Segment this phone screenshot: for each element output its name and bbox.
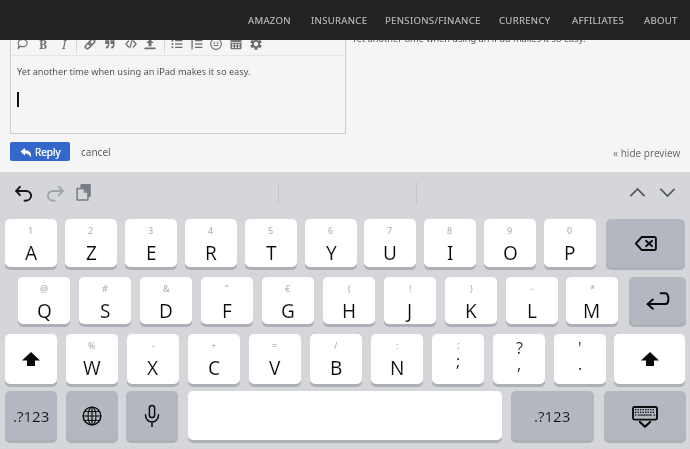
button[interactable]: Editor tool xyxy=(122,35,140,53)
button[interactable]: PENSIONS/FINANCE xyxy=(373,8,493,32)
button[interactable]: 5 xyxy=(245,219,297,267)
button[interactable]: Previous field xyxy=(624,179,650,205)
button[interactable]: 9 xyxy=(484,219,536,267)
staticText: ) xyxy=(470,282,473,294)
button[interactable]: 3 xyxy=(125,219,177,267)
button[interactable]: 8 xyxy=(424,219,476,267)
button[interactable]: : xyxy=(432,334,484,384)
button[interactable]: + xyxy=(188,334,240,384)
button[interactable]: Editor tool xyxy=(141,35,159,53)
staticText: , xyxy=(517,353,522,375)
button[interactable]: ABOUT xyxy=(601,8,690,32)
button[interactable]: Return xyxy=(629,277,686,324)
button[interactable]: @ xyxy=(18,277,70,324)
button[interactable]: Paste xyxy=(71,179,97,205)
staticText: cancel xyxy=(81,145,111,159)
staticText: S xyxy=(100,298,111,324)
button[interactable]: AMAZON xyxy=(209,8,329,32)
button[interactable]: = xyxy=(249,334,301,384)
button[interactable]: « hide preview xyxy=(609,143,685,162)
staticText: .?123 xyxy=(534,406,571,426)
staticText: V xyxy=(269,355,281,381)
button[interactable]: Undo xyxy=(11,179,37,205)
staticText: L xyxy=(527,298,537,324)
button[interactable]: # xyxy=(79,277,131,324)
staticText: A xyxy=(25,240,38,266)
button[interactable]: Shift xyxy=(614,334,685,384)
button[interactable]: ' xyxy=(554,334,606,384)
staticText: H xyxy=(342,298,357,324)
staticText: Yet another time when using an iPad make… xyxy=(17,65,251,78)
button[interactable]: Shift xyxy=(5,334,57,384)
staticText: ABOUT xyxy=(644,14,678,27)
staticText: J xyxy=(407,298,413,324)
staticText: + xyxy=(211,339,217,351)
button[interactable]: Editor tool xyxy=(168,35,186,53)
staticText: Y xyxy=(326,240,337,266)
staticText: / xyxy=(334,339,338,351)
button[interactable]: Next field xyxy=(654,179,680,205)
button[interactable]: Reply xyxy=(10,142,70,161)
staticText: B xyxy=(330,355,343,381)
button[interactable]: Editor tool xyxy=(227,35,245,53)
staticText: INSURANCE xyxy=(311,14,368,27)
button[interactable]: & xyxy=(140,277,192,324)
staticText: I xyxy=(447,240,454,266)
button[interactable]: ! xyxy=(384,277,436,324)
staticText: U xyxy=(383,240,397,266)
button[interactable]: Editor tool xyxy=(247,35,265,53)
staticText: P xyxy=(564,240,576,266)
staticText: ' xyxy=(578,337,582,359)
button[interactable]: CURRENCY xyxy=(465,8,585,32)
button[interactable]: .?123 xyxy=(511,391,594,440)
staticText: @ xyxy=(40,282,49,294)
button[interactable]: € xyxy=(262,277,314,324)
staticText: 3 xyxy=(148,224,154,236)
button[interactable]: Redo xyxy=(41,179,67,205)
button[interactable]: 2 xyxy=(65,219,117,267)
button[interactable]: Change language xyxy=(66,391,118,440)
button[interactable]: - xyxy=(506,277,558,324)
button[interactable]: Dictate xyxy=(126,391,178,440)
staticText: * xyxy=(590,282,595,294)
button[interactable]: ) xyxy=(445,277,497,324)
button[interactable]: 0 xyxy=(544,219,596,267)
button[interactable]: AFFILIATES xyxy=(538,8,658,32)
staticText: ( xyxy=(348,282,351,294)
button[interactable]: : xyxy=(371,334,423,384)
button[interactable]: ( xyxy=(323,277,375,324)
button[interactable]: / xyxy=(310,334,362,384)
staticText: G xyxy=(281,298,295,324)
staticText: ” xyxy=(225,282,229,294)
staticText: % xyxy=(88,339,96,351)
button[interactable]: % xyxy=(66,334,118,384)
staticText: 2 xyxy=(88,224,94,236)
staticText: 5 xyxy=(268,224,274,236)
staticText: W xyxy=(83,355,101,381)
button[interactable]: .?123 xyxy=(5,391,57,440)
staticText: R xyxy=(205,240,217,266)
button[interactable]: Editor tool xyxy=(188,35,206,53)
button[interactable]: 1 xyxy=(5,219,57,267)
button[interactable]: INSURANCE xyxy=(279,8,399,32)
button[interactable]: Editor tool xyxy=(81,35,99,53)
button[interactable]: ? xyxy=(493,334,545,384)
button[interactable]: Editor tool xyxy=(14,35,32,53)
button[interactable]: cancel xyxy=(78,142,114,161)
button[interactable]: Hide keyboard xyxy=(604,391,686,440)
button[interactable]: Backspace xyxy=(606,219,685,267)
button[interactable]: Editor tool xyxy=(207,35,225,53)
button[interactable]: ” xyxy=(201,277,253,324)
button[interactable]: I xyxy=(55,35,73,53)
button[interactable]: B xyxy=(34,35,52,53)
button[interactable]: Editor tool xyxy=(101,35,119,53)
button[interactable]: 6 xyxy=(305,219,357,267)
staticText: Z xyxy=(86,240,97,266)
button[interactable]: * xyxy=(566,277,618,324)
button[interactable]: - xyxy=(127,334,179,384)
button[interactable]: 4 xyxy=(185,219,237,267)
staticText: AMAZON xyxy=(248,14,291,27)
button[interactable]: 7 xyxy=(364,219,416,267)
staticText: 9 xyxy=(507,224,513,236)
